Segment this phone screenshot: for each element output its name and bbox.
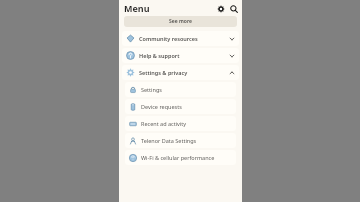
staticText: Settings & privacy <box>139 69 229 76</box>
staticText: Telenor Data Settings <box>141 137 197 144</box>
button[interactable]: Community resources <box>122 31 239 46</box>
button[interactable]: Recent ad activity <box>125 116 236 131</box>
staticText: Settings <box>141 86 162 93</box>
button[interactable]: Help & support <box>122 48 239 63</box>
button[interactable]: Device requests <box>125 99 236 114</box>
staticText: Menu <box>124 2 150 14</box>
button[interactable]: Settings <box>125 82 236 97</box>
staticText: Recent ad activity <box>141 120 187 127</box>
staticText: Wi-Fi & cellular performance <box>141 154 215 161</box>
button[interactable]: Search <box>227 2 240 15</box>
staticText: Device requests <box>141 103 182 110</box>
button[interactable]: Settings <box>214 2 227 15</box>
button[interactable]: Wi-Fi & cellular performance <box>125 150 236 165</box>
staticText: Help & support <box>139 52 229 59</box>
staticText: Community resources <box>139 35 229 42</box>
button[interactable]: Telenor Data Settings <box>125 133 236 148</box>
button[interactable]: Settings & privacy <box>122 65 239 80</box>
button[interactable]: See more <box>124 16 237 27</box>
staticText: See more <box>169 18 192 25</box>
